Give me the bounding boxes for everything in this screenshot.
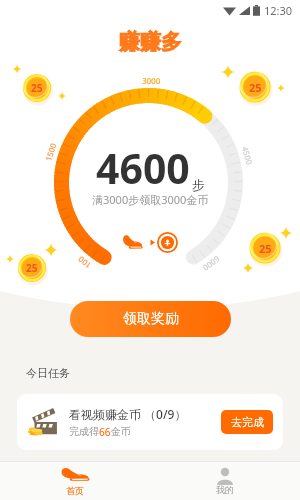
button[interactable]: 领取奖励 [70,301,231,337]
staticText: 满3000步领取3000金币 [92,192,209,207]
staticText: 1500 [42,141,59,162]
staticText: 4600 [96,140,190,196]
button[interactable]: 我的 [150,462,300,500]
staticText: 25 [259,241,272,255]
other: 我的 [214,467,236,481]
staticText: 66 [99,425,111,439]
staticText: 看视频赚金币 （0/9） [69,406,187,422]
staticText: 12:30 [264,3,293,18]
staticText: 25 [249,80,262,94]
staticText: 金币 [111,425,131,438]
staticText: 25 [26,261,38,275]
staticText: 完成得 [69,425,99,438]
staticText: 步 [192,177,205,193]
button[interactable]: 看视频赚金币 （0/9） [17,394,283,450]
button[interactable]: 首页 [0,462,150,500]
staticText: 去完成 [231,415,264,429]
button[interactable]: 去完成 [221,410,273,434]
staticText: 领取奖励 [123,310,179,328]
staticText: 今日任务 [26,366,70,380]
staticText: 3000 [142,75,161,86]
other: 首页 [60,467,90,482]
staticText: 4500 [240,145,255,166]
staticText: 赚赚多 [119,29,182,55]
staticText: 25 [31,81,43,95]
staticText: 6000 [200,254,222,274]
staticText: 我的 [216,484,234,495]
staticText: 100 [75,254,93,271]
staticText: 首页 [66,485,84,496]
